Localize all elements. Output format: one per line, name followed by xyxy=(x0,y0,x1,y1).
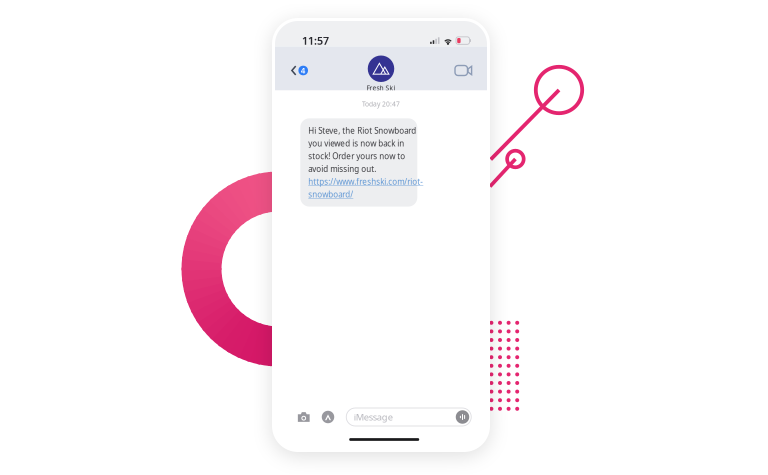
button[interactable]: Camera xyxy=(295,407,312,427)
staticText: Today 20:47 xyxy=(362,99,400,108)
staticText: snowboard/ xyxy=(308,189,353,200)
button[interactable]: iMessage text field xyxy=(346,408,471,426)
staticText: https://www.freshski.com/riot- xyxy=(308,176,423,187)
button[interactable]: FaceTime video call xyxy=(450,57,478,83)
button[interactable]: Back, 4 unread messages xyxy=(284,57,313,84)
staticText: you viewed is now back in xyxy=(308,138,404,149)
staticText: stock! Order yours now to xyxy=(308,151,405,161)
staticText: 11:57 xyxy=(302,33,329,48)
button[interactable]: App Store xyxy=(320,407,336,427)
staticText: iMessage xyxy=(354,411,393,423)
staticText: Fresh Ski xyxy=(366,83,395,92)
staticText: avoid missing out. xyxy=(308,163,376,174)
button[interactable]: Fresh Ski xyxy=(360,53,401,92)
staticText: Hi Steve, the Riot Snowboard xyxy=(308,125,416,136)
staticText: 4 xyxy=(301,65,306,76)
